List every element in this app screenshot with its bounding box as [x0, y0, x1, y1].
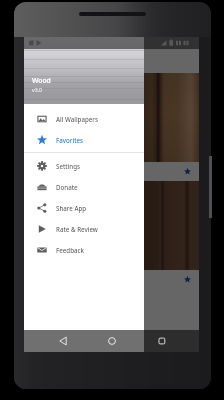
staticText: Donate	[56, 183, 78, 191]
button[interactable]: Settings	[24, 155, 144, 176]
staticText: v3.0	[32, 86, 42, 93]
button[interactable]: Share App	[24, 197, 144, 218]
staticText: Rate & Review	[56, 225, 98, 233]
staticText: Wood	[32, 76, 51, 85]
button[interactable]: Donate	[24, 176, 144, 197]
staticText: Feedback	[56, 246, 85, 254]
button[interactable]: Rate & Review	[24, 218, 144, 239]
staticText: Share App	[56, 204, 87, 212]
button[interactable]: Favorites	[24, 129, 144, 150]
staticText: All Wallpapers	[56, 115, 98, 123]
button[interactable]	[24, 37, 199, 352]
button[interactable]: Feedback	[24, 239, 144, 260]
button[interactable]: All Wallpapers	[24, 108, 144, 129]
staticText: Favorites	[56, 136, 84, 144]
staticText: Settings	[56, 162, 81, 170]
